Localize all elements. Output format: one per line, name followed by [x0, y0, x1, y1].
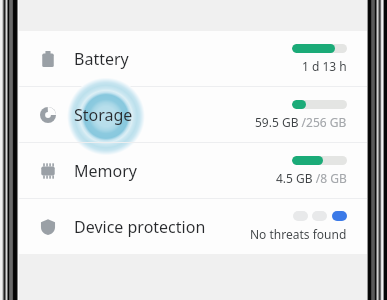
staticText: Storage	[74, 104, 133, 126]
staticText: Memory	[74, 160, 137, 182]
button[interactable]: Battery	[16, 31, 367, 86]
staticText: Battery	[74, 48, 129, 70]
button[interactable]: Memory	[16, 143, 367, 198]
staticText: No threats found	[250, 226, 347, 242]
staticText: 59.5 GB /256 GB	[255, 114, 347, 130]
button[interactable]: Device protection	[16, 199, 367, 254]
staticText: Device protection	[74, 216, 206, 238]
staticText: 1 d 13 h	[302, 58, 347, 74]
button[interactable]: Storage	[16, 87, 367, 142]
staticText: 4.5 GB /8 GB	[276, 170, 347, 186]
